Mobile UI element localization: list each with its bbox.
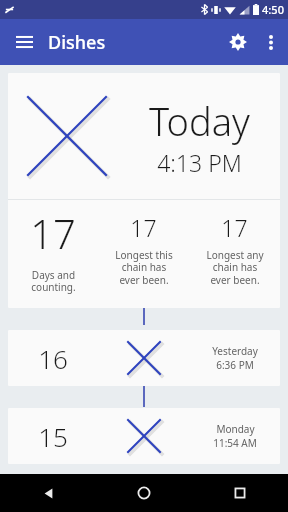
staticText: 11:54 AM	[213, 436, 257, 450]
button[interactable]: 15	[8, 408, 280, 464]
staticText: Monday	[216, 422, 255, 436]
staticText: 17	[30, 206, 76, 260]
staticText: Longest any chain has ever been.	[206, 248, 264, 287]
staticText: Yesterday	[212, 344, 258, 358]
button[interactable]: Home	[96, 474, 192, 512]
button[interactable]: Settings	[220, 24, 256, 60]
staticText: Today	[149, 95, 250, 147]
button[interactable]: More options	[256, 27, 286, 57]
button[interactable]: Open navigation menu	[8, 26, 40, 58]
staticText: Days and counting.	[31, 268, 76, 294]
staticText: 4:13 PM	[157, 147, 242, 178]
staticText: 16	[38, 341, 68, 376]
staticText: 17	[130, 212, 157, 243]
button[interactable]: 16	[8, 330, 280, 386]
staticText: Dishes	[48, 30, 106, 55]
staticText: 15	[38, 419, 68, 454]
button[interactable]: Recent apps	[192, 474, 288, 512]
staticText: 4:50	[262, 2, 284, 17]
button[interactable]: Today	[8, 73, 280, 308]
staticText: 6:36 PM	[216, 358, 254, 372]
button[interactable]: Back	[0, 474, 96, 512]
staticText: 17	[221, 212, 248, 243]
staticText: Longest this chain has ever been.	[115, 248, 173, 287]
